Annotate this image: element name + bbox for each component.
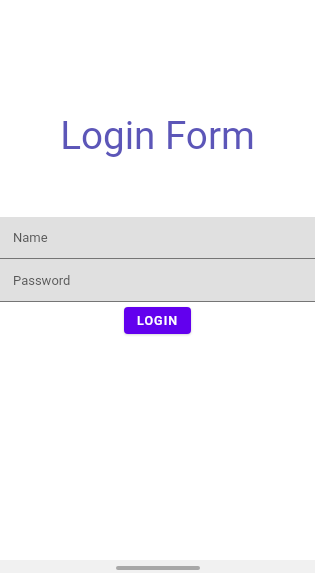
staticText: LOGIN (137, 313, 179, 328)
other: Navigation bar (0, 560, 315, 573)
staticText: Login Form (0, 113, 315, 158)
button[interactable]: Name (0, 217, 315, 258)
button[interactable]: LOGIN (124, 307, 191, 334)
button[interactable]: Password (0, 259, 315, 301)
staticText: Password (13, 273, 71, 288)
staticText: Name (13, 230, 48, 245)
